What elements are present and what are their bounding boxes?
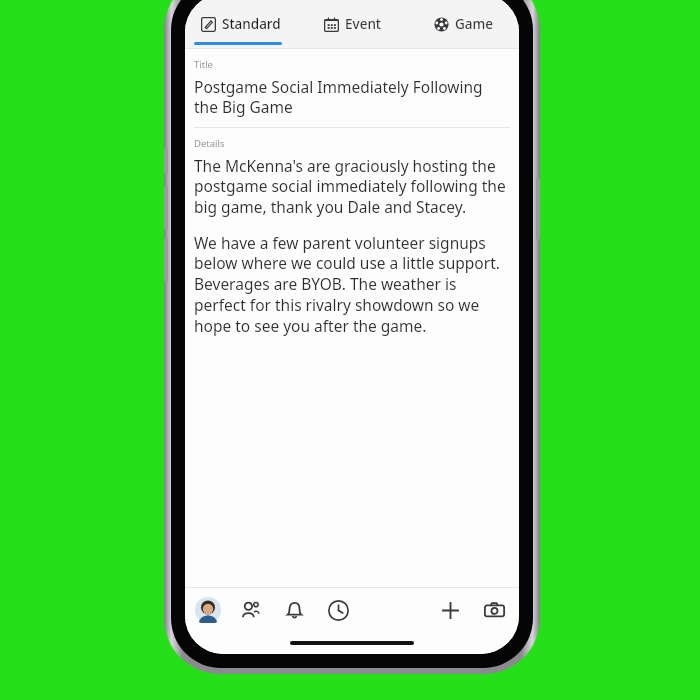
staticText: We have a few parent volunteer signups b… (194, 232, 510, 337)
staticText: Standard (222, 15, 281, 33)
button[interactable]: Add (435, 595, 465, 625)
staticText: Event (345, 15, 382, 33)
button[interactable]: Game (408, 0, 519, 48)
button[interactable]: Notifications (279, 595, 309, 625)
staticText: Details (194, 137, 225, 150)
button[interactable]: Profile (193, 595, 223, 625)
button[interactable]: Camera (479, 595, 509, 625)
staticText: The McKenna's are graciously hosting the… (194, 155, 510, 218)
staticText: Game (455, 15, 494, 33)
button[interactable]: Event (297, 0, 408, 48)
button[interactable]: People (235, 595, 265, 625)
staticText: Title (194, 58, 213, 71)
button[interactable]: Standard (185, 0, 297, 48)
staticText: Postgame Social Immediately Following th… (194, 76, 510, 118)
button[interactable]: Recent (323, 595, 353, 625)
